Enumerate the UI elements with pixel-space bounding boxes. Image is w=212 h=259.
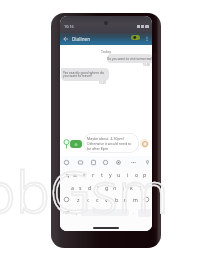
button[interactable]: j bbox=[120, 183, 127, 192]
staticText: , bbox=[76, 210, 78, 215]
button[interactable]: More options bbox=[144, 35, 149, 43]
staticText: Today bbox=[60, 49, 152, 54]
staticText: s bbox=[79, 184, 82, 191]
button[interactable]: b bbox=[113, 195, 120, 204]
staticText: f bbox=[97, 184, 99, 191]
staticText: n bbox=[124, 196, 128, 203]
button[interactable]: p bbox=[141, 170, 148, 179]
staticText: . bbox=[133, 210, 135, 215]
staticText: e bbox=[83, 171, 86, 178]
staticText: q bbox=[66, 171, 70, 178]
staticText: b bbox=[115, 196, 119, 203]
button[interactable]: Settings bbox=[115, 159, 121, 165]
button[interactable]: Shift bbox=[61, 195, 71, 204]
staticText: y bbox=[109, 171, 112, 178]
button[interactable]: e bbox=[81, 170, 88, 179]
staticText: m bbox=[133, 196, 138, 203]
button[interactable]: k bbox=[128, 183, 135, 192]
button[interactable]: i bbox=[124, 170, 131, 179]
button[interactable]: ?123 bbox=[61, 208, 72, 217]
staticText: t bbox=[101, 171, 103, 178]
button[interactable]: Maybe about 4.30pm? Otherwise it would n… bbox=[83, 133, 139, 153]
staticText: j bbox=[123, 184, 125, 191]
staticText: i bbox=[127, 171, 129, 178]
staticText: g bbox=[105, 184, 109, 191]
staticText: h bbox=[113, 184, 117, 191]
button[interactable]: l bbox=[137, 183, 144, 192]
button[interactable]: a bbox=[69, 183, 76, 192]
staticText: Yes exactly good where do you want to tr… bbox=[63, 70, 107, 78]
button[interactable]: Back bbox=[62, 35, 69, 42]
button[interactable]: w bbox=[72, 170, 79, 179]
staticText: x bbox=[86, 196, 89, 203]
staticText: z bbox=[77, 196, 80, 203]
button[interactable]: Video call bbox=[131, 35, 140, 40]
staticText: v bbox=[105, 196, 108, 203]
button[interactable]: c bbox=[94, 195, 101, 204]
button[interactable]: x bbox=[84, 195, 91, 204]
button[interactable]: f bbox=[94, 183, 101, 192]
button[interactable]: d bbox=[86, 183, 93, 192]
staticText: w bbox=[73, 171, 78, 178]
button[interactable]: u bbox=[115, 170, 122, 179]
button[interactable]: Do you want to visit tomorrow? bbox=[107, 54, 152, 63]
staticText: Dialinen bbox=[72, 36, 91, 42]
button[interactable]: Location bbox=[63, 139, 70, 149]
button[interactable]: Emoji bbox=[63, 159, 69, 165]
button[interactable]: n bbox=[122, 195, 129, 204]
staticText: u bbox=[117, 171, 121, 178]
button[interactable]: Period bbox=[130, 208, 137, 217]
button[interactable]: h bbox=[111, 183, 118, 192]
staticText: obGsm bbox=[0, 152, 169, 230]
staticText: o bbox=[135, 171, 139, 178]
button[interactable]: Send bbox=[140, 139, 149, 148]
button[interactable]: y bbox=[107, 170, 114, 179]
button[interactable]: t bbox=[98, 170, 105, 179]
button[interactable]: Yes exactly good where do you want to tr… bbox=[61, 68, 109, 81]
button[interactable]: Comma bbox=[73, 208, 80, 217]
button[interactable]: m bbox=[132, 195, 139, 204]
button[interactable]: v bbox=[103, 195, 110, 204]
button[interactable]: Backspace bbox=[141, 195, 151, 204]
button[interactable]: Camera bbox=[70, 140, 82, 148]
staticText: k bbox=[130, 184, 133, 191]
button[interactable]: Space bbox=[81, 209, 129, 216]
button[interactable]: Clipboard bbox=[102, 159, 108, 165]
staticText: ?123 bbox=[63, 211, 70, 215]
button[interactable]: s bbox=[77, 183, 84, 192]
button[interactable]: r bbox=[90, 170, 97, 179]
staticText: c bbox=[96, 196, 99, 203]
staticText: Maybe about 4.30pm? Otherwise it would n… bbox=[87, 136, 133, 151]
button[interactable]: More bbox=[130, 159, 136, 165]
staticText: 10:16 bbox=[64, 24, 74, 29]
button[interactable]: GIF bbox=[77, 159, 83, 165]
button[interactable]: q bbox=[64, 170, 71, 179]
staticText: d bbox=[88, 184, 92, 191]
staticText: Do you want to visit tomorrow? bbox=[107, 57, 152, 61]
button[interactable]: g bbox=[103, 183, 110, 192]
staticText: p bbox=[143, 171, 147, 178]
button[interactable]: Voice input bbox=[144, 159, 150, 165]
button[interactable]: z bbox=[75, 195, 82, 204]
button[interactable]: Sticker bbox=[90, 159, 96, 165]
button[interactable]: o bbox=[133, 170, 140, 179]
staticText: l bbox=[140, 184, 142, 191]
staticText: 10:08 bbox=[143, 63, 150, 67]
staticText: r bbox=[92, 171, 95, 178]
staticText: a bbox=[71, 184, 74, 191]
staticText: 10:09 bbox=[99, 81, 106, 85]
